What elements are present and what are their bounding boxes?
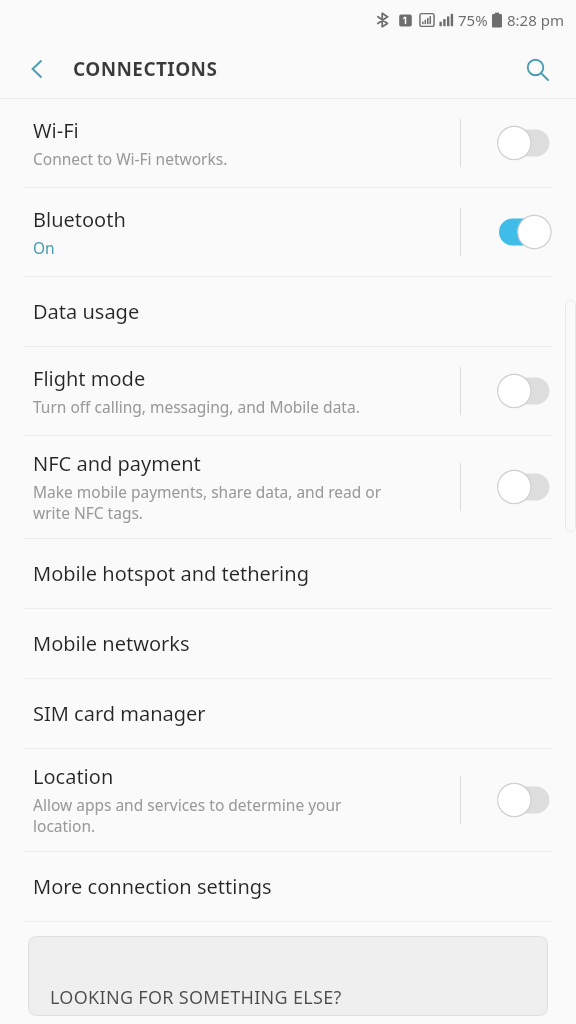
- staticText: Mobile hotspot and tethering: [33, 560, 309, 587]
- button[interactable]: Back: [16, 48, 58, 90]
- staticText: Data usage: [33, 298, 140, 325]
- staticText: Wi-Fi: [33, 117, 79, 144]
- staticText: 8:28 pm: [507, 10, 564, 30]
- button[interactable]: Wi-Fi: [0, 99, 576, 187]
- button[interactable]: NFC and payment switch: [460, 436, 576, 538]
- staticText: Flight mode: [33, 365, 146, 392]
- button[interactable]: Flight mode: [0, 347, 576, 435]
- staticText: Make mobile payments, share data, and re…: [33, 481, 382, 524]
- button[interactable]: Data usage: [0, 277, 576, 346]
- staticText: Allow apps and services to determine you…: [33, 794, 342, 837]
- staticText: On: [33, 237, 55, 258]
- staticText: LOOKING FOR SOMETHING ELSE?: [50, 985, 342, 1010]
- staticText: NFC and payment: [33, 450, 201, 477]
- button[interactable]: Mobile networks: [0, 609, 576, 678]
- staticText: 75%: [458, 10, 488, 30]
- button[interactable]: SIM card manager: [0, 679, 576, 748]
- button[interactable]: Mobile hotspot and tethering: [0, 539, 576, 608]
- button[interactable]: Flight mode switch: [460, 347, 576, 435]
- button[interactable]: Location switch: [460, 749, 576, 851]
- button[interactable]: LOOKING FOR SOMETHING ELSE?: [28, 936, 548, 1016]
- button[interactable]: Bluetooth: [0, 188, 576, 276]
- button[interactable]: Bluetooth switch: [460, 188, 576, 276]
- button[interactable]: Location: [0, 749, 576, 851]
- staticText: More connection settings: [33, 873, 272, 900]
- staticText: Turn off calling, messaging, and Mobile …: [33, 396, 360, 417]
- staticText: Connect to Wi-Fi networks.: [33, 148, 228, 169]
- staticText: Mobile networks: [33, 630, 190, 657]
- button[interactable]: NFC and payment: [0, 436, 576, 538]
- staticText: SIM card manager: [33, 700, 206, 727]
- button[interactable]: Search: [515, 47, 559, 91]
- staticText: Bluetooth: [33, 206, 126, 233]
- staticText: CONNECTIONS: [73, 56, 218, 82]
- button[interactable]: More connection settings: [0, 852, 576, 921]
- button[interactable]: Wi-Fi switch: [460, 99, 576, 187]
- staticText: Location: [33, 763, 114, 790]
